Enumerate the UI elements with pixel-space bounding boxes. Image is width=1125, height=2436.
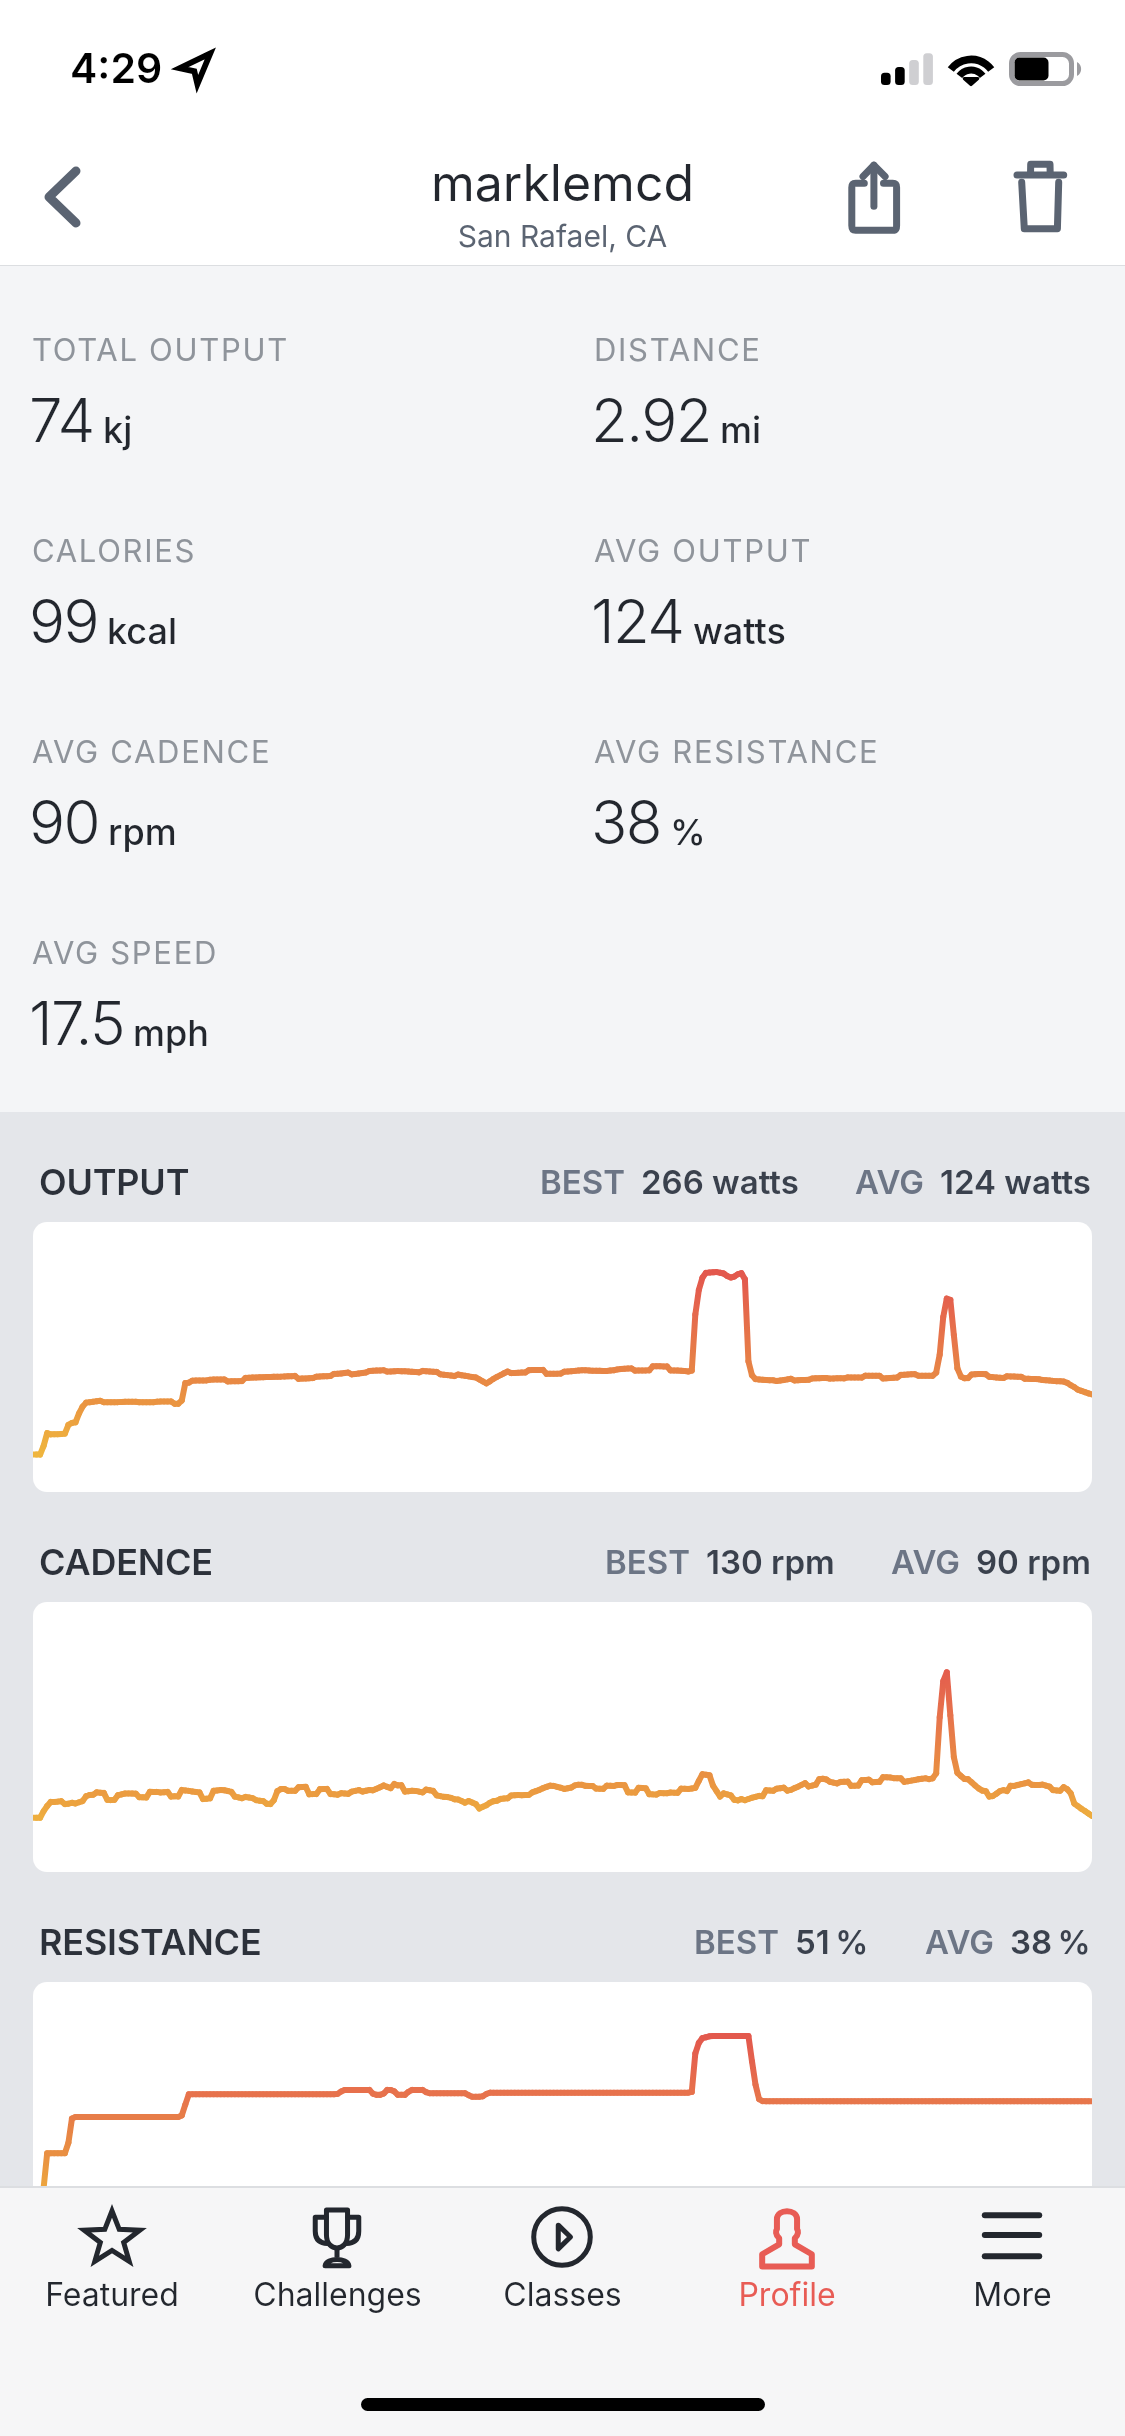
button[interactable]: Profile <box>675 2188 899 2348</box>
staticText: BEST <box>694 1922 779 1962</box>
staticText: Featured <box>45 2275 179 2314</box>
staticText: AVG <box>891 1542 960 1582</box>
staticText: mi <box>720 408 762 452</box>
staticText: AVG <box>855 1162 924 1202</box>
staticText: Challenges <box>253 2275 422 2314</box>
staticText: OUTPUT <box>39 1160 190 1204</box>
staticText: AVG SPEED <box>32 934 219 972</box>
staticText: 74 <box>29 384 94 457</box>
staticText: AVG OUTPUT <box>594 532 813 570</box>
staticText: 38 <box>591 786 661 859</box>
button[interactable]: More <box>900 2188 1124 2348</box>
staticText: RESISTANCE <box>39 1920 262 1964</box>
staticText: 99 <box>29 585 98 658</box>
staticText: CADENCE <box>39 1540 213 1584</box>
staticText: 90 <box>29 786 99 859</box>
staticText: CALORIES <box>32 532 197 570</box>
staticText: Classes <box>503 2275 622 2314</box>
staticText: BEST <box>605 1542 690 1582</box>
staticText: 2.92 <box>591 384 711 457</box>
staticText: 266 watts <box>641 1162 799 1202</box>
button[interactable]: Back <box>8 149 104 245</box>
staticText: TOTAL OUTPUT <box>32 331 289 369</box>
staticText: 51 % <box>795 1922 869 1962</box>
staticText: BEST <box>540 1162 625 1202</box>
staticText: 124 <box>591 585 684 658</box>
staticText: 17.5 <box>29 987 124 1060</box>
staticText: 90 rpm <box>976 1542 1091 1582</box>
staticText: kj <box>103 408 133 452</box>
staticText: AVG CADENCE <box>32 733 272 771</box>
staticText: % <box>670 810 706 854</box>
button[interactable]: Delete <box>988 137 1098 247</box>
staticText: rpm <box>108 810 177 854</box>
staticText: marklemcd <box>0 153 1125 213</box>
staticText: More <box>973 2275 1052 2314</box>
staticText: Profile <box>738 2275 836 2314</box>
staticText: 124 watts <box>940 1162 1091 1202</box>
button[interactable]: Challenges <box>225 2188 449 2348</box>
staticText: San Rafael, CA <box>0 218 1125 254</box>
staticText: mph <box>133 1011 209 1055</box>
staticText: DISTANCE <box>594 331 762 369</box>
staticText: 130 rpm <box>706 1542 835 1582</box>
button[interactable]: Classes <box>450 2188 674 2348</box>
staticText: 38 % <box>1010 1922 1091 1962</box>
button[interactable]: Featured <box>0 2188 224 2348</box>
staticText: watts <box>693 609 786 653</box>
button[interactable]: Share <box>822 137 932 247</box>
staticText: kcal <box>107 609 177 653</box>
staticText: AVG <box>925 1922 994 1962</box>
staticText: AVG RESISTANCE <box>594 733 880 771</box>
staticText: 4:29 <box>70 43 163 93</box>
